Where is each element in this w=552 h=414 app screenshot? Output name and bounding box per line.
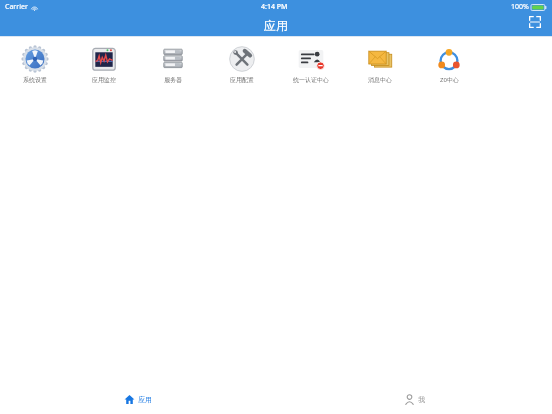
button[interactable]: 应用监控 (88, 44, 120, 85)
button[interactable]: 我 (276, 384, 552, 414)
button[interactable]: 消息中心 (364, 44, 396, 85)
button[interactable]: 服务器 (157, 44, 189, 85)
staticText: 4:14 PM (261, 2, 288, 12)
button[interactable]: Z0中心 (433, 44, 465, 85)
staticText: 应用 (264, 18, 288, 33)
staticText: Carrier (5, 2, 28, 12)
staticText: 应用监控 (92, 76, 116, 84)
button[interactable]: Scan QR code (524, 11, 546, 33)
staticText: 服务器 (164, 76, 182, 84)
button[interactable]: 统一认证中心 (291, 44, 331, 85)
staticText: 统一认证中心 (293, 76, 329, 84)
button[interactable]: 应用 (0, 384, 276, 414)
staticText: 消息中心 (368, 76, 392, 84)
staticText: 应用 (138, 395, 152, 404)
staticText: 我 (418, 395, 425, 404)
staticText: Z0中心 (440, 76, 459, 84)
button[interactable]: 应用配置 (226, 44, 258, 85)
staticText: 系统设置 (23, 76, 47, 84)
staticText: 100% (511, 2, 529, 12)
staticText: 应用配置 (230, 76, 254, 84)
button[interactable]: 系统设置 (19, 44, 51, 85)
